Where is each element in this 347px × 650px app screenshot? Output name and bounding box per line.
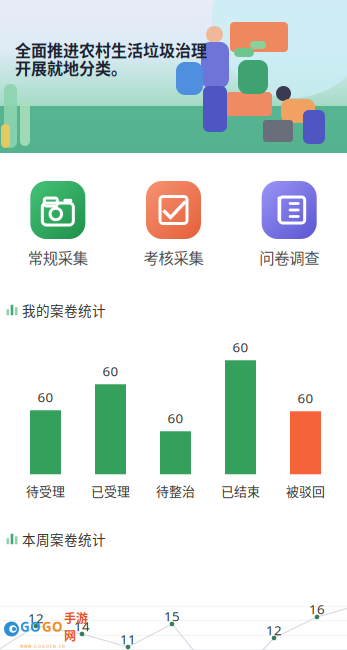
staticText: 本周案卷统计 — [22, 529, 106, 549]
staticText: 60 — [167, 409, 183, 427]
staticText: 全面推进农村生活垃圾治理 — [15, 38, 207, 61]
staticText: 常规采集 — [28, 246, 88, 268]
staticText: GO — [42, 617, 63, 636]
button[interactable]: 常规采集 — [0, 181, 116, 268]
staticText: 问卷调查 — [259, 246, 319, 268]
staticText: 手游网 — [64, 609, 88, 644]
staticText: 11 — [120, 630, 136, 648]
staticText: 60 — [102, 362, 118, 380]
button[interactable]: 考核采集 — [116, 181, 231, 268]
staticText: GO — [20, 617, 41, 636]
staticText: 已受理 — [91, 481, 130, 500]
staticText: 12 — [266, 621, 282, 639]
staticText: 开展就地分类。 — [15, 56, 127, 79]
staticText: 60 — [37, 388, 53, 406]
staticText: 15 — [164, 607, 180, 625]
staticText: 待受理 — [26, 481, 65, 500]
staticText: 被驳回 — [286, 481, 325, 500]
staticText: 16 — [309, 600, 325, 618]
staticText: 60 — [232, 338, 248, 356]
staticText: 14 — [74, 617, 90, 635]
staticText: 12 — [28, 609, 44, 627]
staticText: 考核采集 — [143, 246, 203, 268]
staticText: 60 — [297, 389, 313, 407]
staticText: 待整治 — [156, 481, 195, 500]
staticText: W W W . G O G O C N . C N — [20, 644, 65, 649]
staticText: 我的案卷统计 — [22, 300, 106, 320]
button[interactable]: 问卷调查 — [231, 181, 347, 268]
staticText: 已结束 — [221, 481, 260, 500]
